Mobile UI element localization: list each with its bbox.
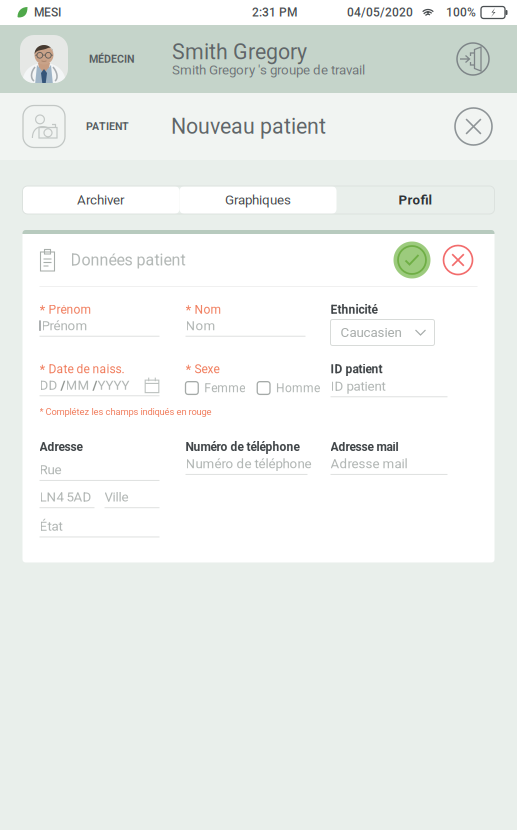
staticText: Sexe [194,362,219,376]
staticText: Ethnicité [330,303,377,317]
button[interactable]: Femme [185,381,245,395]
staticText: LN4 5AD [39,489,91,505]
button[interactable]: Se déconnecter [456,42,490,76]
staticText: Prénom [41,318,87,333]
staticText: MÉDECIN [89,53,135,65]
button[interactable]: Ville [104,490,159,508]
staticText: Numéro de téléphone [185,440,299,454]
button[interactable]: Graphiques [179,186,336,214]
staticText: Nom [185,318,215,333]
staticText: 2:31 PM [252,5,297,20]
staticText: Prénom [48,303,91,317]
staticText: Adresse mail [330,456,407,472]
staticText: Données patient [70,251,185,269]
button[interactable]: DD [39,378,159,396]
button[interactable]: Nom [185,318,305,337]
staticText: * [39,361,45,377]
button[interactable]: Fermer [455,108,492,145]
button[interactable]: Prénom [39,318,159,337]
staticText: ID patient [330,362,382,376]
staticText: Adresse mail [330,440,398,454]
staticText: MESI [34,5,61,20]
staticText: / [89,377,97,393]
button[interactable]: Numéro de téléphone [185,457,307,475]
staticText: Adresse [39,440,82,454]
staticText: Ville [104,489,128,505]
staticText: 100% [446,5,476,20]
staticText: Nouveau patient [171,114,326,139]
button[interactable]: État [39,519,159,537]
staticText: / [57,377,65,393]
button[interactable]: Profil [336,186,494,214]
staticText: * [185,302,191,317]
staticText: Femme [204,381,245,395]
button[interactable]: Rue [39,463,159,481]
staticText: Graphiques [225,192,291,208]
staticText: État [39,518,62,534]
staticText: YYYY [97,377,129,393]
staticText: * [185,361,191,377]
button[interactable]: ID patient [330,379,447,397]
staticText: Archiver [77,192,125,208]
button[interactable]: Homme [257,381,320,395]
staticText: Rue [39,462,61,478]
staticText: DD [39,377,57,393]
button[interactable]: Adresse mail [330,457,447,475]
button[interactable]: Valider [393,241,430,278]
staticText: Numéro de téléphone [185,456,311,472]
staticText: Caucasien [340,325,401,340]
staticText: Nom [194,303,221,317]
staticText: Smith Gregory [172,39,307,64]
staticText: PATIENT [86,120,129,133]
staticText: * [39,302,45,317]
staticText: ID patient [330,378,385,394]
button[interactable]: LN4 5AD [39,490,94,508]
staticText: Profil [398,192,432,208]
staticText: MM [65,377,89,393]
button[interactable]: Caucasien [330,319,434,345]
button[interactable]: Annuler [443,245,472,274]
staticText: Homme [276,381,320,395]
staticText: Smith Gregory 's groupe de travail [172,62,365,78]
staticText: * Complétez les champs indiqués en rouge [39,406,211,417]
staticText: 04/05/2020 [347,5,413,20]
button[interactable]: Photo du patient [22,104,66,148]
staticText: Date de naiss. [48,362,124,376]
button[interactable]: Archiver [22,186,179,214]
